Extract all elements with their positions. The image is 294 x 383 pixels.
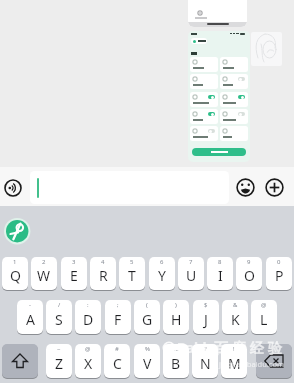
- staticText: (: [146, 301, 148, 309]
- staticText: :: [87, 301, 89, 309]
- button[interactable]: (: [134, 300, 160, 334]
- button[interactable]: [190, 126, 218, 141]
- button[interactable]: [256, 344, 292, 378]
- staticText: jingyan.baidu.com: [219, 359, 284, 369]
- button[interactable]: @: [251, 300, 277, 334]
- staticText: @: [85, 345, 91, 353]
- button[interactable]: 9: [236, 257, 262, 290]
- staticText: -: [29, 301, 31, 309]
- staticText: 7: [189, 258, 193, 266]
- staticText: 9: [247, 258, 251, 266]
- staticText: R: [99, 266, 108, 285]
- button[interactable]: ?: [192, 344, 218, 378]
- button[interactable]: [190, 109, 218, 124]
- button[interactable]: [191, 38, 207, 44]
- button[interactable]: ~: [46, 344, 72, 378]
- button[interactable]: ): [163, 300, 189, 334]
- staticText: T: [128, 266, 136, 285]
- staticText: 百度经验: [212, 340, 284, 358]
- button[interactable]: 5: [119, 257, 145, 290]
- staticText: 1: [13, 258, 17, 266]
- staticText: J: [204, 310, 208, 329]
- staticText: ~: [57, 345, 61, 353]
- button[interactable]: [236, 178, 255, 197]
- staticText: 2: [42, 258, 46, 266]
- button[interactable]: 1: [2, 257, 28, 290]
- button[interactable]: [3, 178, 23, 198]
- staticText: M: [228, 354, 241, 373]
- staticText: V: [143, 354, 152, 373]
- staticText: E: [70, 266, 78, 285]
- staticText: 5: [130, 258, 134, 266]
- staticText: I: [218, 266, 223, 285]
- staticText: ?: [204, 345, 207, 353]
- button[interactable]: …: [163, 344, 189, 378]
- staticText: K: [231, 310, 240, 329]
- button[interactable]: [208, 112, 215, 116]
- button[interactable]: [220, 109, 248, 124]
- staticText: Baidu: [177, 339, 216, 357]
- button[interactable]: 4: [90, 257, 116, 290]
- button[interactable]: 0: [266, 257, 292, 290]
- button[interactable]: [190, 92, 218, 107]
- button[interactable]: 3: [61, 257, 87, 290]
- button[interactable]: [188, 31, 250, 162]
- button[interactable]: [265, 178, 284, 197]
- staticText: Q: [10, 266, 21, 285]
- staticText: H: [171, 310, 182, 329]
- staticText: !: [233, 345, 235, 353]
- button[interactable]: [238, 95, 245, 99]
- button[interactable]: [238, 112, 245, 116]
- staticText: F: [114, 310, 122, 329]
- staticText: U: [186, 266, 197, 285]
- button[interactable]: :: [75, 300, 101, 334]
- button[interactable]: [188, 0, 247, 27]
- button[interactable]: 2: [31, 257, 57, 290]
- button[interactable]: [220, 92, 248, 107]
- staticText: 3: [72, 258, 76, 266]
- staticText: /: [58, 301, 61, 309]
- button[interactable]: [251, 32, 282, 66]
- button[interactable]: @: [75, 344, 101, 378]
- button[interactable]: !: [221, 344, 247, 378]
- button[interactable]: [190, 57, 218, 72]
- button[interactable]: [2, 344, 38, 378]
- staticText: $: [204, 301, 208, 309]
- staticText: %: [145, 345, 150, 353]
- button[interactable]: [208, 129, 215, 133]
- button[interactable]: [4, 218, 30, 244]
- button[interactable]: [190, 74, 218, 89]
- staticText: Z: [55, 354, 64, 373]
- button[interactable]: /: [46, 300, 72, 334]
- button[interactable]: -: [17, 300, 43, 334]
- button[interactable]: ;: [105, 300, 131, 334]
- staticText: P: [275, 266, 284, 285]
- button[interactable]: [30, 171, 229, 204]
- staticText: O: [244, 266, 255, 285]
- button[interactable]: 7: [178, 257, 204, 290]
- staticText: Y: [158, 266, 166, 285]
- button[interactable]: %: [134, 344, 160, 378]
- staticText: N: [200, 354, 211, 373]
- staticText: L: [260, 310, 268, 329]
- staticText: B: [171, 354, 181, 373]
- button[interactable]: [220, 57, 248, 72]
- staticText: ): [175, 301, 177, 309]
- staticText: &: [233, 301, 238, 309]
- button[interactable]: [220, 126, 248, 141]
- button[interactable]: [238, 77, 245, 81]
- staticText: C: [113, 354, 122, 373]
- button[interactable]: #: [104, 344, 130, 378]
- staticText: D: [83, 310, 94, 329]
- staticText: 8: [218, 258, 222, 266]
- button[interactable]: 8: [207, 257, 233, 290]
- staticText: G: [142, 310, 153, 329]
- staticText: 4: [101, 258, 105, 266]
- button[interactable]: [208, 95, 215, 99]
- button[interactable]: 6: [149, 257, 175, 290]
- button[interactable]: $: [193, 300, 219, 334]
- button[interactable]: [192, 148, 246, 156]
- button[interactable]: &: [222, 300, 248, 334]
- button[interactable]: [220, 74, 248, 89]
- staticText: ;: [117, 301, 119, 309]
